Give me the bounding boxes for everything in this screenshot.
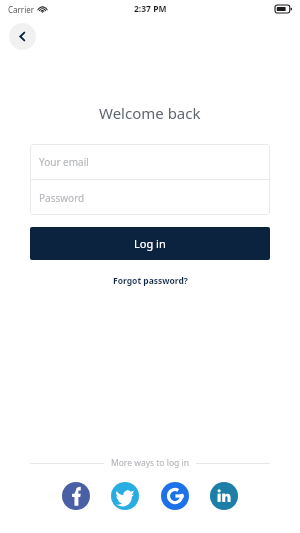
button[interactable]: Back [9, 23, 36, 50]
button[interactable]: Log in with Twitter [111, 482, 139, 510]
button[interactable]: Your email [30, 144, 270, 179]
button[interactable]: Log in with Google [161, 482, 189, 510]
staticText: 2:37 PM [134, 3, 167, 15]
staticText: Forgot password? [113, 275, 188, 287]
staticText: Log in [134, 236, 166, 251]
button[interactable]: Log in with LinkedIn [210, 482, 238, 510]
staticText: Password [39, 191, 85, 205]
staticText: More ways to log in [111, 457, 189, 469]
staticText: Carrier [8, 4, 35, 15]
button[interactable]: Forgot password? [107, 272, 194, 290]
button[interactable]: Log in [30, 227, 270, 260]
button[interactable]: Password [30, 180, 270, 215]
staticText: Welcome back [99, 103, 201, 123]
staticText: Your email [39, 155, 89, 169]
button[interactable]: Log in with Facebook [62, 482, 90, 510]
